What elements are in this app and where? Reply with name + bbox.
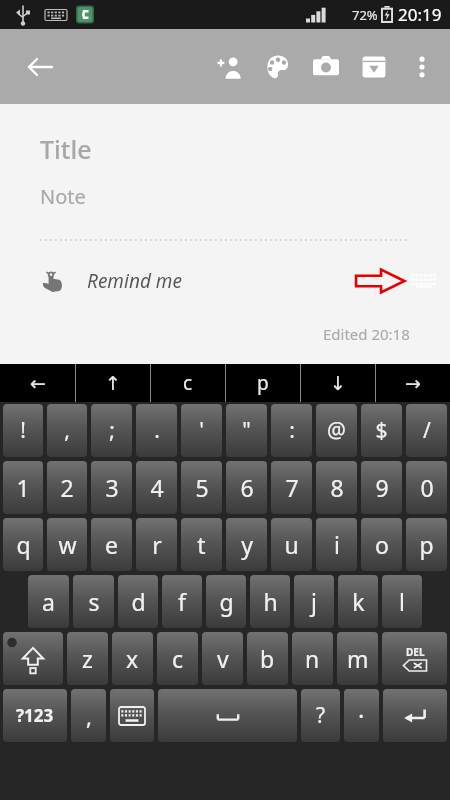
- button[interactable]: y: [226, 518, 267, 571]
- button[interactable]: →: [375, 364, 450, 402]
- button[interactable]: 8: [316, 461, 357, 514]
- button[interactable]: Switch keyboard: [110, 689, 154, 742]
- staticText: l: [399, 586, 405, 617]
- staticText: n: [305, 643, 320, 674]
- staticText: ,: [86, 701, 92, 731]
- staticText: ·: [358, 699, 365, 732]
- button[interactable]: 5: [181, 461, 222, 514]
- button[interactable]: b: [247, 632, 288, 685]
- staticText: $: [375, 416, 388, 445]
- button[interactable]: f: [162, 575, 202, 628]
- button[interactable]: m: [337, 632, 378, 685]
- staticText: p: [419, 529, 434, 560]
- button[interactable]: ,: [47, 404, 87, 457]
- button[interactable]: w: [47, 518, 87, 571]
- staticText: ": [242, 416, 251, 445]
- button[interactable]: Question mark: [301, 689, 340, 742]
- button[interactable]: $: [361, 404, 402, 457]
- button[interactable]: 9: [361, 461, 402, 514]
- staticText: 20:19: [398, 3, 442, 26]
- button[interactable]: Symbols: [3, 689, 67, 742]
- button[interactable]: .: [136, 404, 177, 457]
- staticText: Title: [40, 132, 92, 166]
- staticText: →: [405, 372, 421, 394]
- staticText: 2: [60, 472, 74, 503]
- staticText: t: [197, 529, 206, 560]
- button[interactable]: Archive: [350, 43, 398, 91]
- button[interactable]: More options: [398, 43, 446, 91]
- staticText: .: [154, 416, 160, 445]
- button[interactable]: k: [338, 575, 378, 628]
- button[interactable]: r: [136, 518, 177, 571]
- button[interactable]: j: [294, 575, 334, 628]
- button[interactable]: l: [382, 575, 422, 628]
- button[interactable]: Add collaborator: [206, 43, 254, 91]
- button[interactable]: g: [206, 575, 246, 628]
- button[interactable]: p: [225, 364, 300, 402]
- button[interactable]: Take photo: [302, 43, 350, 91]
- button[interactable]: c: [150, 364, 225, 402]
- button[interactable]: Remind me: [0, 259, 450, 303]
- staticText: DEL: [406, 645, 425, 659]
- button[interactable]: Note: [0, 183, 450, 210]
- button[interactable]: o: [361, 518, 402, 571]
- button[interactable]: x: [112, 632, 153, 685]
- button[interactable]: z: [67, 632, 108, 685]
- button[interactable]: ↑: [75, 364, 150, 402]
- button[interactable]: t: [181, 518, 222, 571]
- staticText: q: [16, 529, 31, 560]
- button[interactable]: ←: [0, 364, 75, 402]
- button[interactable]: Keyboard: [406, 263, 442, 299]
- staticText: j: [311, 586, 317, 617]
- button[interactable]: ;: [91, 404, 132, 457]
- staticText: /: [423, 416, 431, 445]
- button[interactable]: 4: [136, 461, 177, 514]
- button[interactable]: q: [3, 518, 43, 571]
- staticText: k: [352, 586, 365, 617]
- button[interactable]: 7: [271, 461, 312, 514]
- button[interactable]: s: [73, 575, 114, 628]
- staticText: Edited 20:18: [323, 324, 410, 344]
- button[interactable]: e: [91, 518, 132, 571]
- button[interactable]: u: [271, 518, 312, 571]
- button[interactable]: n: [292, 632, 333, 685]
- button[interactable]: Back: [16, 43, 64, 91]
- button[interactable]: Space: [158, 689, 297, 742]
- button[interactable]: ": [226, 404, 267, 457]
- staticText: ↑: [105, 372, 121, 394]
- button[interactable]: Title: [0, 132, 450, 166]
- button[interactable]: 0: [406, 461, 447, 514]
- staticText: c: [172, 643, 184, 674]
- button[interactable]: a: [28, 575, 69, 628]
- button[interactable]: Shift: [3, 632, 63, 685]
- button[interactable]: /: [406, 404, 447, 457]
- button[interactable]: :: [271, 404, 312, 457]
- staticText: 3: [105, 472, 119, 503]
- button[interactable]: 2: [47, 461, 87, 514]
- staticText: @: [327, 416, 346, 445]
- button[interactable]: ↓: [300, 364, 375, 402]
- button[interactable]: !: [3, 404, 43, 457]
- staticText: g: [219, 586, 234, 617]
- staticText: o: [375, 529, 389, 560]
- button[interactable]: Enter: [383, 689, 447, 742]
- button[interactable]: 6: [226, 461, 267, 514]
- button[interactable]: @: [316, 404, 357, 457]
- button[interactable]: v: [202, 632, 243, 685]
- button[interactable]: Delete: [382, 632, 447, 685]
- staticText: 8: [330, 472, 344, 503]
- button[interactable]: h: [250, 575, 290, 628]
- button[interactable]: Change color: [254, 43, 302, 91]
- button[interactable]: 3: [91, 461, 132, 514]
- button[interactable]: 1: [3, 461, 43, 514]
- button[interactable]: ': [181, 404, 222, 457]
- button[interactable]: Comma: [71, 689, 106, 742]
- button[interactable]: i: [316, 518, 357, 571]
- staticText: ;: [109, 416, 115, 445]
- button[interactable]: c: [157, 632, 198, 685]
- staticText: r: [152, 529, 162, 560]
- button[interactable]: d: [118, 575, 158, 628]
- button[interactable]: p: [406, 518, 447, 571]
- button[interactable]: Period: [344, 689, 379, 742]
- staticText: x: [126, 643, 139, 674]
